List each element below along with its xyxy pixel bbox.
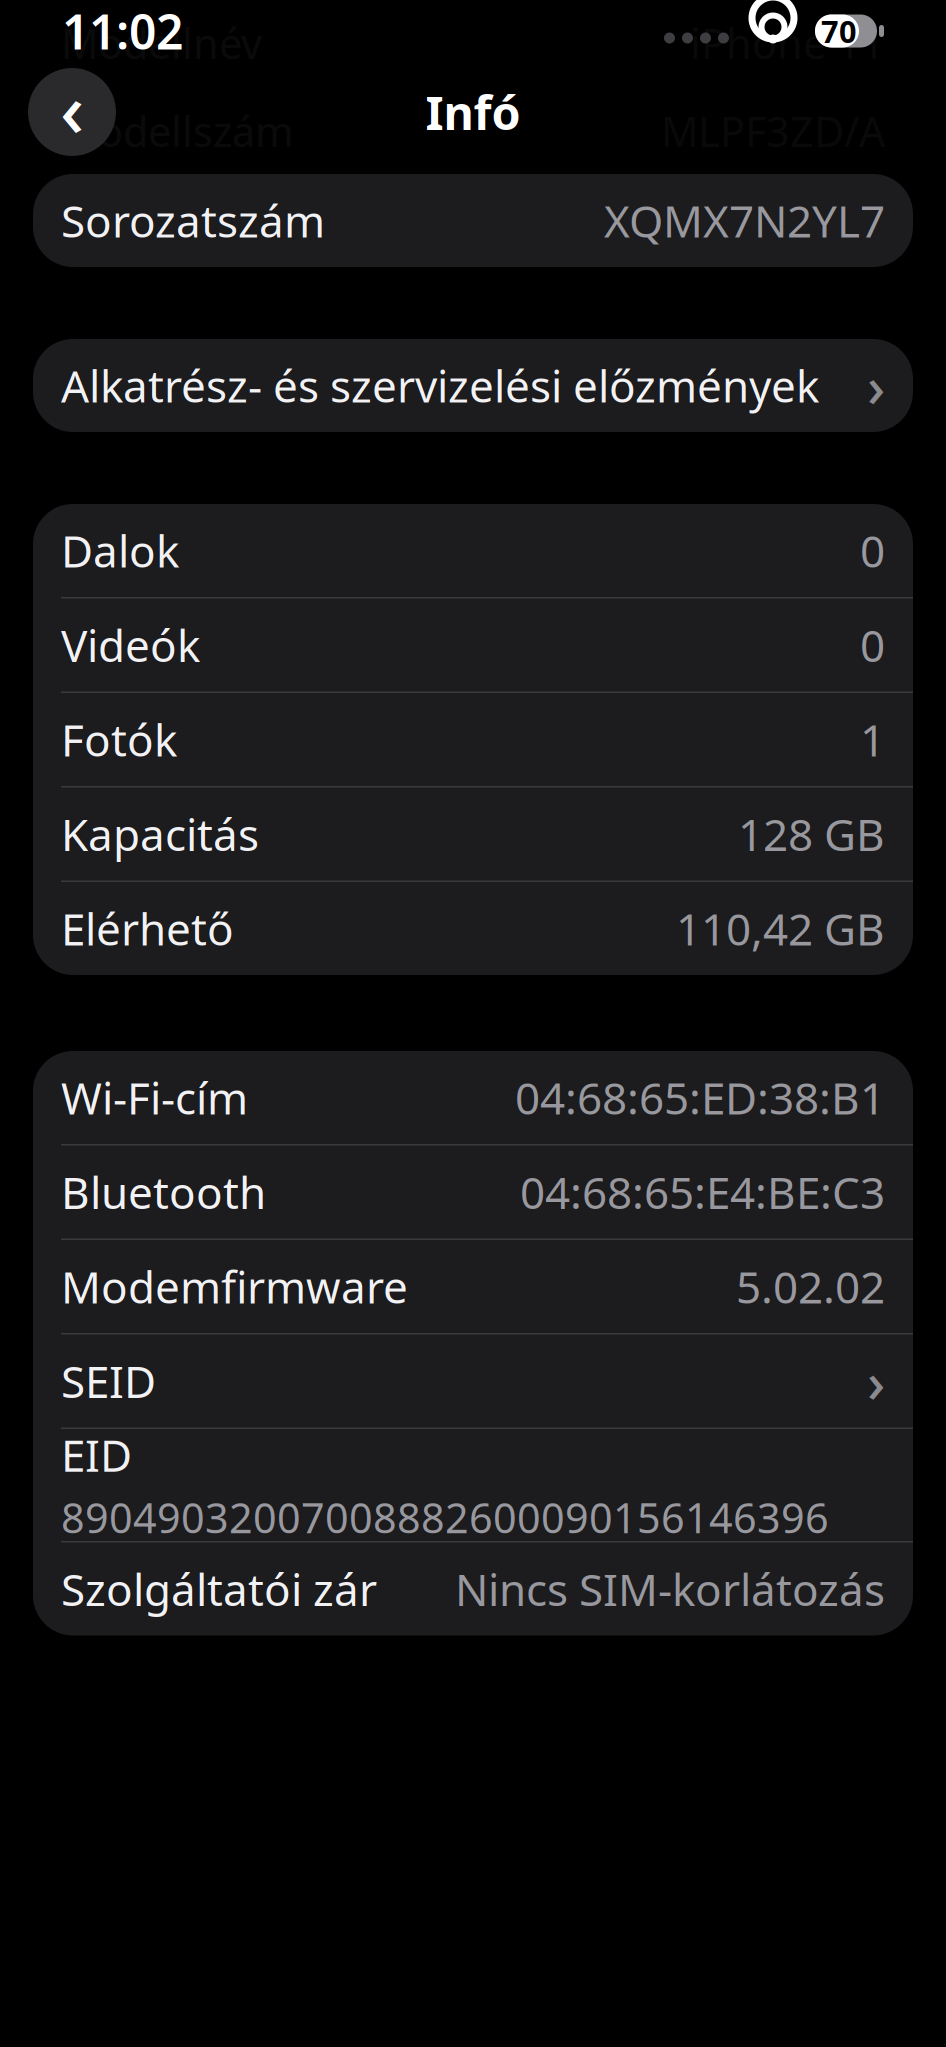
button[interactable]: Alkatrész- és szervizelési előzmények [33,339,913,432]
staticText: Modellszám [61,104,294,158]
staticText: SEID [61,1352,156,1410]
staticText: 1 [860,710,885,769]
staticText: › [867,1344,885,1418]
staticText: MLPF3ZD/A [661,104,885,158]
staticText: 04:68:65:ED:38:B1 [515,1068,885,1127]
staticText: Infó [425,81,520,143]
staticText: 0 [860,521,885,580]
staticText: 5.02.02 [736,1257,885,1316]
staticText: Nincs SIM-korlátozás [455,1560,885,1618]
staticText: 04:68:65:E4:BE:C3 [520,1163,885,1221]
staticText: Alkatrész- és szervizelési előzmények [61,356,819,415]
button[interactable]: Back [28,68,116,156]
staticText: 0 [860,616,885,674]
staticText: › [867,348,885,423]
staticText: Modellnév [61,16,262,70]
staticText: Bluetooth [61,1163,266,1221]
staticText: Modemfirmware [61,1257,408,1316]
staticText: 70 [821,11,857,51]
staticText: 89049032007008882600090156146396 [61,1490,829,1545]
staticText: Sorozatszám [61,191,325,250]
staticText: Videók [61,616,200,674]
staticText: Szolgáltatói zár [61,1560,377,1618]
staticText: Kapacitás [61,805,259,863]
staticText: ‹ [60,58,84,158]
staticText: iPhone 11 [690,16,885,70]
staticText: XQMX7N2YL7 [604,191,885,250]
staticText: EID [61,1425,132,1484]
staticText: 128 GB [738,805,885,863]
staticText: 11:02 [62,0,183,63]
staticText: Fotók [61,710,177,769]
staticText: Elérhető [61,899,234,958]
staticText: Wi-Fi-cím [61,1068,248,1127]
staticText: Dalok [61,521,179,580]
staticText: 110,42 GB [676,899,885,958]
button[interactable]: SEID [33,1334,913,1427]
